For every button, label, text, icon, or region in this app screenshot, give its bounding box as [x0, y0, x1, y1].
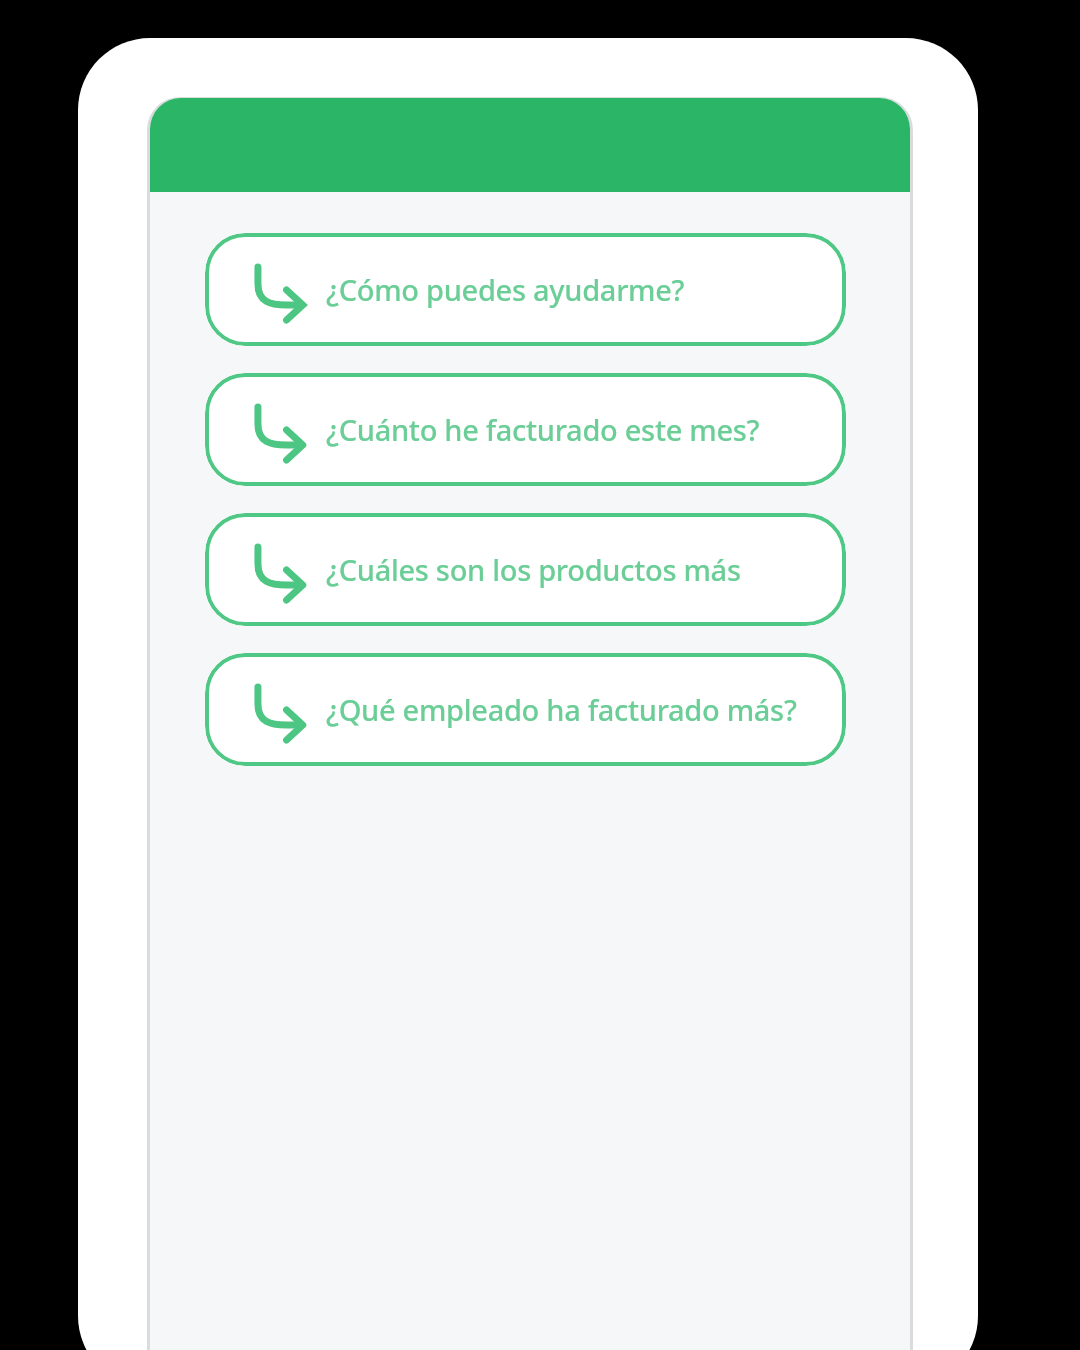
- button[interactable]: ¿Qué empleado ha facturado más?: [205, 653, 846, 766]
- button[interactable]: ¿Cuánto he facturado este mes?: [205, 373, 846, 486]
- staticText: ¿Cuánto he facturado este mes?: [326, 410, 760, 449]
- staticText: ¿Cómo puedes ayudarme?: [326, 270, 685, 309]
- staticText: ¿Cuáles son los productos más vendidos?: [326, 550, 826, 589]
- button[interactable]: ¿Cómo puedes ayudarme?: [205, 233, 846, 346]
- button[interactable]: ¿Cuáles son los productos más vendidos?: [205, 513, 846, 626]
- staticText: ¿Qué empleado ha facturado más?: [326, 690, 797, 729]
